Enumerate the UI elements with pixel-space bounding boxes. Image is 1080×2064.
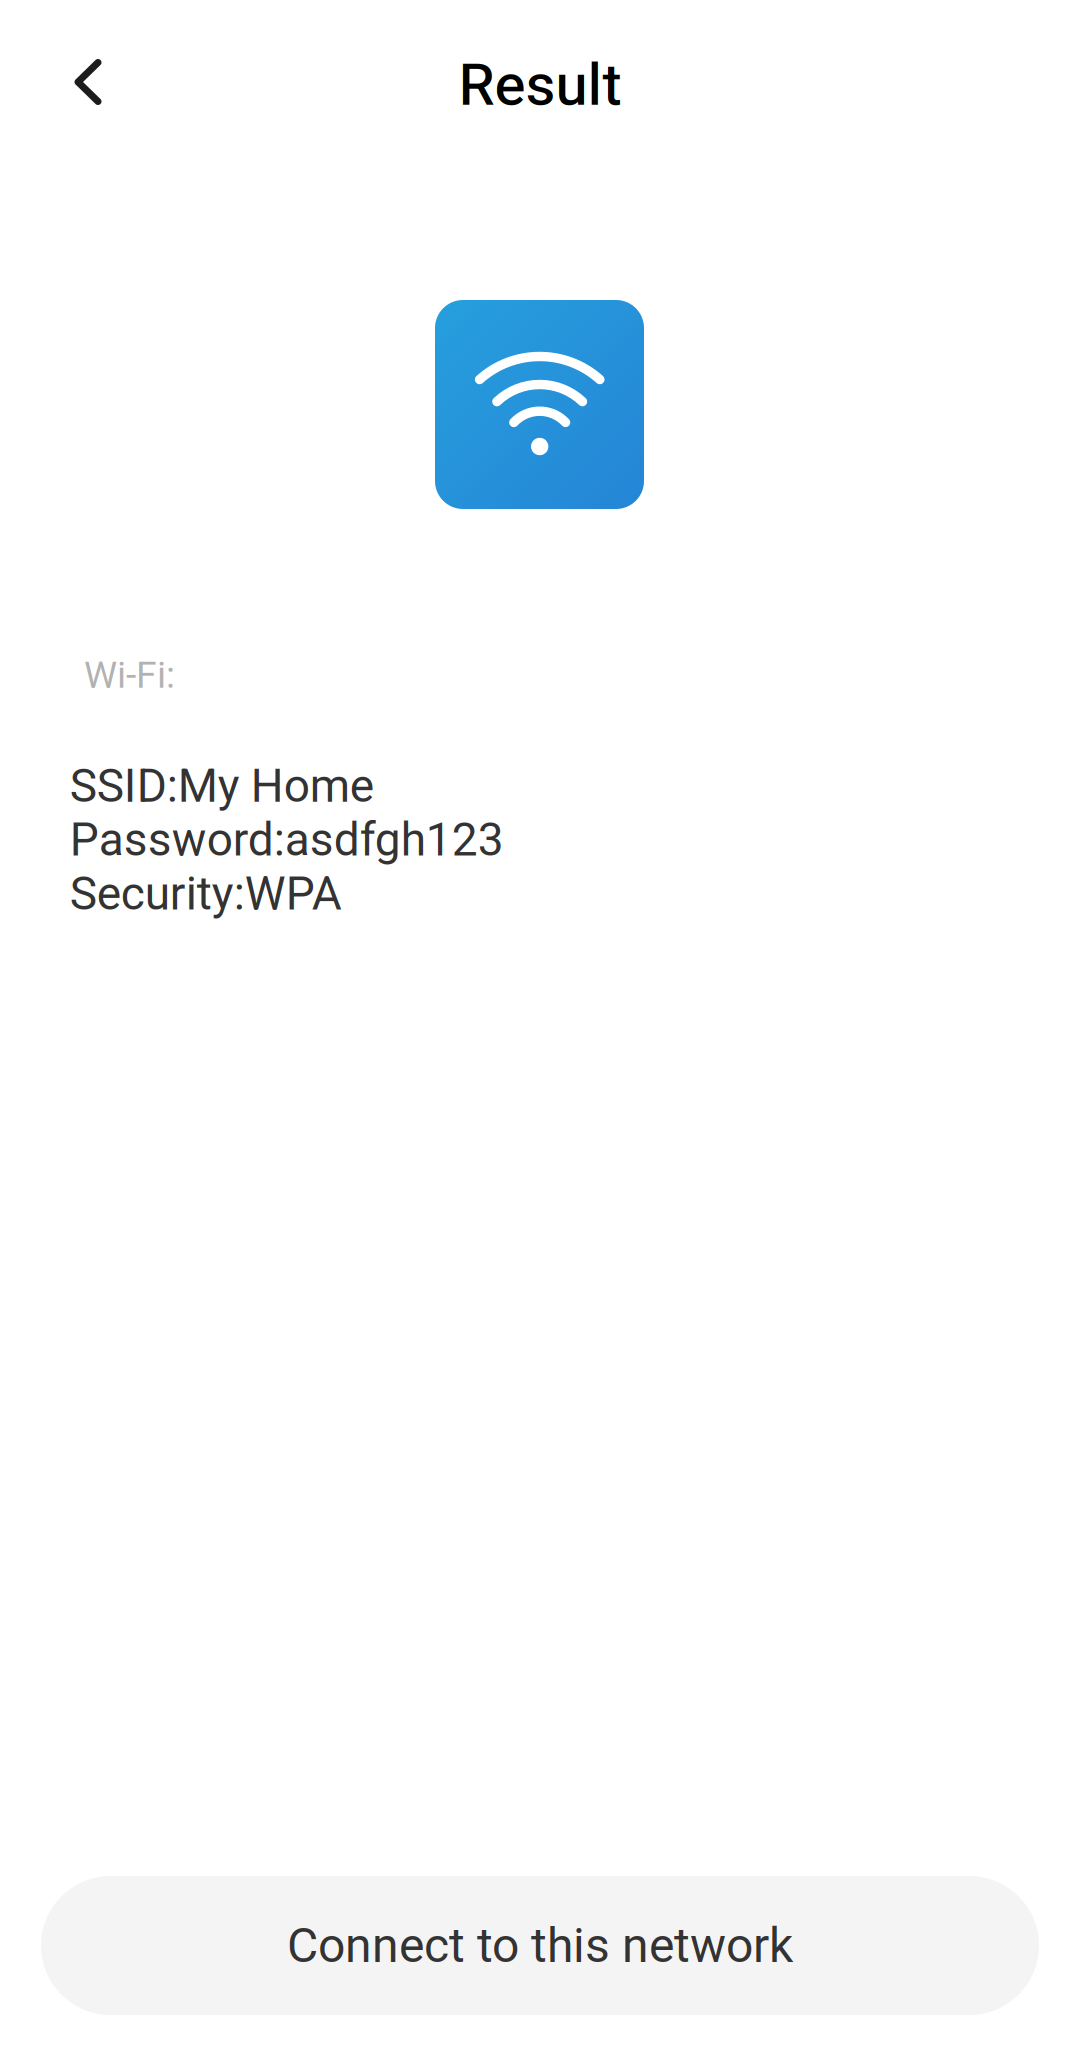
staticText: Result — [458, 51, 621, 119]
button[interactable]: Connect to this network — [41, 1876, 1039, 2015]
staticText: Security:WPA — [70, 867, 342, 921]
staticText: SSID:My Home — [70, 759, 374, 813]
staticText: Wi-Fi: — [84, 653, 175, 697]
staticText: Connect to this network — [287, 1917, 793, 1974]
staticText: Password:asdfgh123 — [70, 813, 504, 867]
button[interactable]: Back — [42, 36, 134, 128]
